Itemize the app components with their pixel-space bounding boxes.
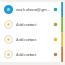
- button[interactable]: Add contact: [0, 17, 65, 32]
- button[interactable]: Add contact: [0, 32, 65, 47]
- staticText: Add contact: [16, 52, 36, 57]
- staticText: Add contact: [16, 22, 36, 27]
- staticText: work.ahocat@gm…: [16, 7, 50, 12]
- button[interactable]: work.ahocat@gm…: [0, 2, 65, 17]
- button[interactable]: Add contact: [0, 47, 65, 62]
- staticText: Add contact: [16, 37, 36, 42]
